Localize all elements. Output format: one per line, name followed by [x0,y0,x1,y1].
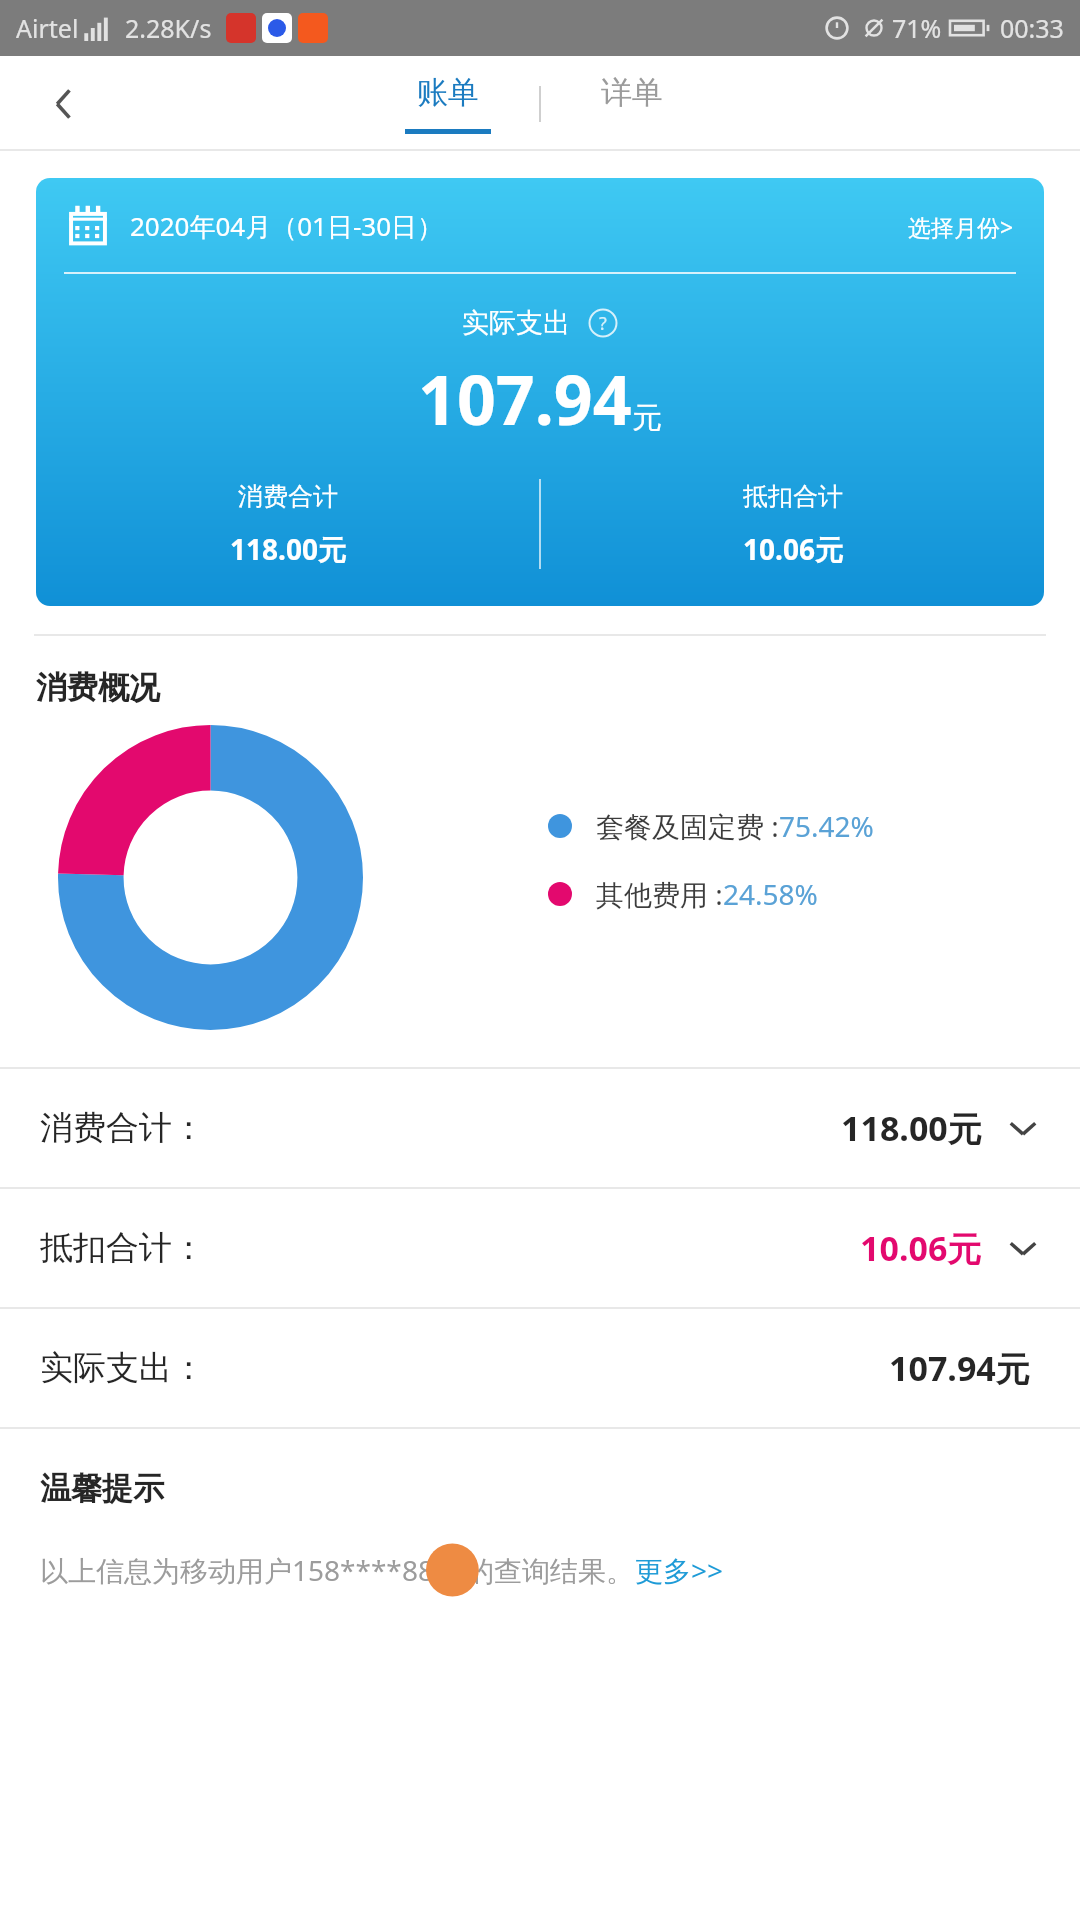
staticText: 实际支出： [40,1347,205,1389]
staticText: 2020年04月（01日-30日） [130,208,444,244]
staticText: 消费概况 [36,668,160,707]
staticText: 00:33 [1000,11,1064,45]
button[interactable]: 更多>> [635,1551,724,1589]
button[interactable]: 抵扣合计： [0,1189,1080,1307]
staticText: 详单 [601,73,663,112]
staticText: 实际支出 [462,306,570,340]
button[interactable]: 消费合计： [0,1069,1080,1187]
staticText: 账单 [417,73,479,112]
staticText: 2.28K/s [125,11,212,45]
button[interactable]: Help [588,308,618,338]
staticText: 消费合计： [40,1107,205,1149]
staticText: 抵扣合计 [743,481,843,512]
button[interactable]: 选择月份> [908,211,1014,242]
staticText: 其他费用 : [596,875,723,913]
staticText: 温馨提示 [40,1469,164,1508]
staticText: ? [599,311,607,336]
staticText: 8888的查询结果。 [402,1551,635,1589]
button[interactable]: Back [36,76,92,132]
staticText: Airtel [16,11,79,45]
staticText: 71% [892,11,942,45]
staticText: 24.58% [723,875,818,913]
staticText: 消费合计 [238,481,338,512]
staticText: 抵扣合计： [40,1227,205,1269]
staticText: 75.42% [779,807,874,845]
button[interactable]: 详单 [581,73,683,134]
staticText: 元 [632,399,662,437]
staticText: 107.94 [418,352,632,445]
button[interactable]: 账单 [397,73,499,134]
staticText: 107.94元 [889,1345,1030,1391]
staticText: 118.00元 [230,530,346,568]
staticText: 118.00元 [841,1105,982,1151]
staticText: 10.06元 [743,530,843,568]
staticText: 套餐及固定费 : [596,807,779,845]
staticText: 10.06元 [860,1225,982,1271]
button[interactable]: 2020年04月（01日-30日） [36,178,1044,606]
button[interactable]: 实际支出： [0,1309,1080,1427]
staticText: 以上信息为移动用户158**** [40,1551,402,1589]
